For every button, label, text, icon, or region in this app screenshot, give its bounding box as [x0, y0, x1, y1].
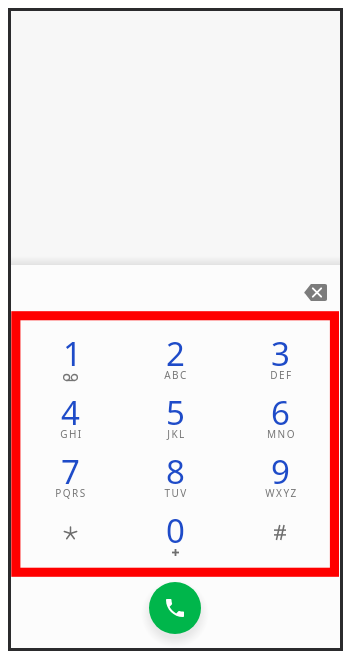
staticText: 6 — [271, 390, 290, 430]
button[interactable]: 6 — [228, 386, 332, 444]
button[interactable]: 8 — [123, 445, 227, 503]
staticText: 2 — [166, 331, 185, 371]
button[interactable]: Star — [18, 504, 122, 562]
button[interactable]: 7 — [18, 445, 122, 503]
staticText: WXYZ — [265, 486, 298, 500]
staticText: DEF — [270, 368, 293, 382]
button[interactable]: 3 — [228, 327, 332, 385]
staticText: 0 — [166, 508, 185, 548]
button[interactable]: 9 — [228, 445, 332, 503]
staticText: TUV — [164, 486, 188, 500]
button[interactable]: 2 — [123, 327, 227, 385]
button[interactable]: 1 voicemail — [18, 327, 122, 385]
staticText: PQRS — [55, 486, 87, 500]
staticText: 4 — [61, 390, 80, 430]
staticText: GHI — [60, 427, 83, 441]
button[interactable]: Backspace — [295, 272, 335, 312]
button[interactable]: 5 — [123, 386, 227, 444]
button[interactable]: Call — [149, 582, 201, 634]
staticText: 8 — [166, 449, 185, 489]
staticText: 9 — [271, 449, 290, 489]
staticText: MNO — [267, 427, 296, 441]
staticText: 3 — [271, 331, 290, 371]
staticText: 1 — [63, 331, 82, 371]
staticText: 5 — [166, 390, 185, 430]
staticText: 7 — [61, 449, 80, 489]
button[interactable]: 4 — [18, 386, 122, 444]
button[interactable]: Pound — [228, 504, 332, 562]
staticText: JKL — [167, 427, 186, 441]
button[interactable]: 0 plus — [123, 504, 227, 562]
staticText: ABC — [164, 368, 188, 382]
